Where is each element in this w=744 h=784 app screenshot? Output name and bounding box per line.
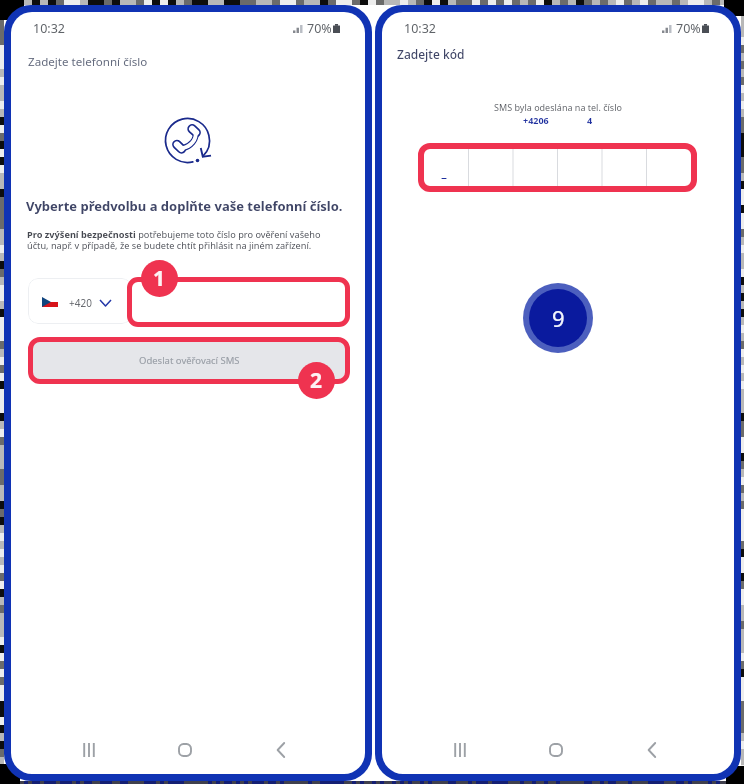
staticText: Zadejte telefonní číslo [28, 54, 148, 70]
staticText: 10:32 [404, 20, 436, 37]
button[interactable]: 9 [529, 289, 587, 347]
button[interactable]: Home [157, 728, 213, 772]
staticText: 70% [307, 20, 332, 37]
staticText: Zadejte kód [397, 46, 465, 62]
staticText: 4 [587, 114, 593, 126]
staticText: – [441, 169, 448, 185]
staticText: SMS byla odeslána na tel. číslo [382, 101, 734, 113]
button[interactable]: Recent apps [61, 728, 117, 772]
staticText: Pro zvýšení bezpečnosti potřebujeme toto… [27, 228, 327, 252]
staticText: 70% [676, 20, 701, 37]
staticText: 1 [153, 264, 166, 293]
staticText: 9 [552, 303, 565, 333]
staticText: 10:32 [33, 20, 65, 37]
button[interactable]: Back [624, 728, 680, 772]
button[interactable]: Back [253, 728, 309, 772]
button[interactable]: Odeslat ověřovací SMS [33, 342, 345, 379]
button[interactable]: Recent apps [432, 728, 488, 772]
staticText: Odeslat ověřovací SMS [139, 354, 240, 367]
staticText: 2 [310, 366, 323, 395]
staticText: +420 [69, 296, 92, 310]
button[interactable]: +420 [28, 278, 132, 324]
button[interactable]: – [424, 149, 691, 186]
staticText: Vyberte předvolbu a doplňte vaše telefon… [26, 197, 343, 215]
button[interactable]: Home [528, 728, 584, 772]
button[interactable] [127, 277, 350, 327]
staticText: +4206 [523, 114, 549, 126]
